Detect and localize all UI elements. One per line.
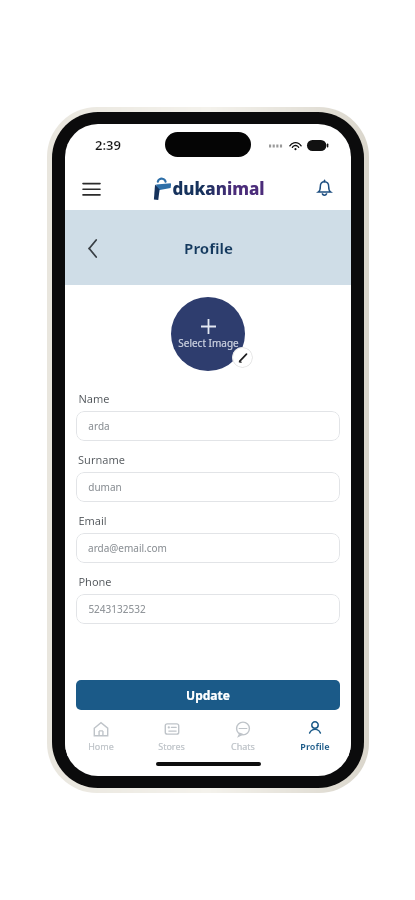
staticText: 5243132532 <box>88 602 146 616</box>
staticText: Update <box>186 687 230 703</box>
staticText: Profile <box>300 740 330 752</box>
staticText: arda <box>88 419 110 433</box>
staticText: Name <box>78 391 110 406</box>
button[interactable]: 5243132532 <box>76 594 340 624</box>
staticText: 2:39 <box>95 136 121 154</box>
button[interactable]: Profile <box>279 716 351 756</box>
button[interactable]: Chats <box>207 716 279 756</box>
staticText: Surname <box>78 452 125 467</box>
button[interactable]: Update <box>76 680 340 710</box>
button[interactable]: Menu <box>73 170 109 206</box>
button[interactable]: Home <box>65 716 136 756</box>
button[interactable]: Edit image <box>232 347 253 368</box>
staticText: dukanimal <box>172 177 265 200</box>
staticText: Email <box>78 513 107 528</box>
staticText: Home <box>88 740 114 752</box>
button[interactable]: Notifications <box>307 171 341 205</box>
staticText: duman <box>88 480 122 494</box>
staticText: Chats <box>231 740 255 752</box>
staticText: Stores <box>158 740 185 752</box>
button[interactable]: Stores <box>136 716 207 756</box>
staticText: Phone <box>78 574 112 589</box>
staticText: Select Image <box>178 336 239 350</box>
staticText: arda@email.com <box>88 541 167 555</box>
button[interactable]: arda <box>76 411 340 441</box>
button[interactable]: Back <box>75 230 111 266</box>
button[interactable]: arda@email.com <box>76 533 340 563</box>
button[interactable]: duman <box>76 472 340 502</box>
button[interactable]: Select Image <box>171 297 245 371</box>
staticText: Profile <box>184 238 233 258</box>
